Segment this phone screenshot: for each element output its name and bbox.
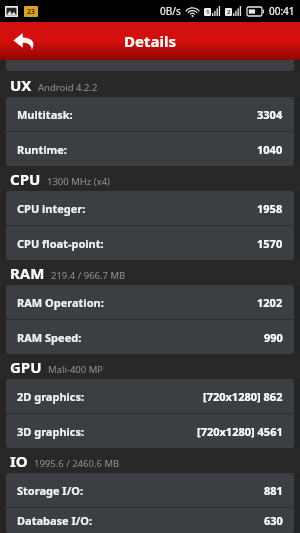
button[interactable]: Multitask: — [6, 97, 294, 131]
staticText: 2D graphics: — [17, 389, 85, 404]
staticText: 23 — [27, 7, 36, 17]
staticText: 1995.6 / 2460.6 MB — [34, 457, 120, 470]
staticText: 1202 — [257, 295, 283, 310]
staticText: RAM — [10, 263, 45, 283]
staticText: 1300 MHz (x4) — [47, 175, 110, 188]
staticText: 1040 — [257, 142, 283, 157]
staticText: IO — [10, 451, 28, 471]
staticText: Android 4.2.2 — [38, 81, 98, 94]
staticText: CPU float-point: — [17, 236, 104, 251]
button[interactable]: 3D graphics: — [6, 414, 294, 448]
staticText: Multitask: — [17, 107, 73, 122]
button[interactable]: Storage I/O: — [6, 473, 294, 507]
staticText: [720x1280] 4561 — [197, 424, 283, 439]
staticText: 1570 — [257, 236, 283, 251]
staticText: Storage I/O: — [17, 483, 84, 498]
button[interactable]: Back — [0, 22, 48, 60]
staticText: 3304 — [257, 107, 283, 122]
staticText: [720x1280] 862 — [203, 389, 283, 404]
button[interactable]: RAM Operation: — [6, 285, 294, 319]
staticText: Database I/O: — [17, 513, 93, 528]
staticText: CPU integer: — [17, 201, 86, 216]
staticText: 630 — [264, 513, 283, 528]
staticText: GPU — [10, 357, 42, 377]
staticText: 219.4 / 966.7 MB — [51, 269, 126, 282]
staticText: Details — [124, 31, 176, 51]
button[interactable]: RAM Speed: — [6, 320, 294, 354]
staticText: UX — [10, 75, 32, 95]
staticText: Runtime: — [17, 142, 67, 157]
staticText: RAM Operation: — [17, 295, 104, 310]
staticText: Mali-400 MP — [48, 363, 104, 376]
staticText: 1 — [206, 8, 210, 16]
button[interactable]: CPU integer: — [6, 191, 294, 225]
button[interactable]: CPU float-point: — [6, 226, 294, 260]
staticText: 1958 — [257, 201, 283, 216]
staticText: 00:41 — [269, 4, 295, 18]
staticText: 881 — [264, 483, 283, 498]
button[interactable]: Database I/O: — [6, 508, 294, 533]
staticText: 3D graphics: — [17, 424, 85, 439]
staticText: RAM Speed: — [17, 330, 82, 345]
staticText: 990 — [264, 330, 283, 345]
staticText: 0B/s — [160, 4, 181, 18]
staticText: CPU — [10, 169, 41, 189]
staticText: 2 — [227, 8, 231, 16]
button[interactable]: 2D graphics: — [6, 379, 294, 413]
button[interactable]: Runtime: — [6, 132, 294, 166]
